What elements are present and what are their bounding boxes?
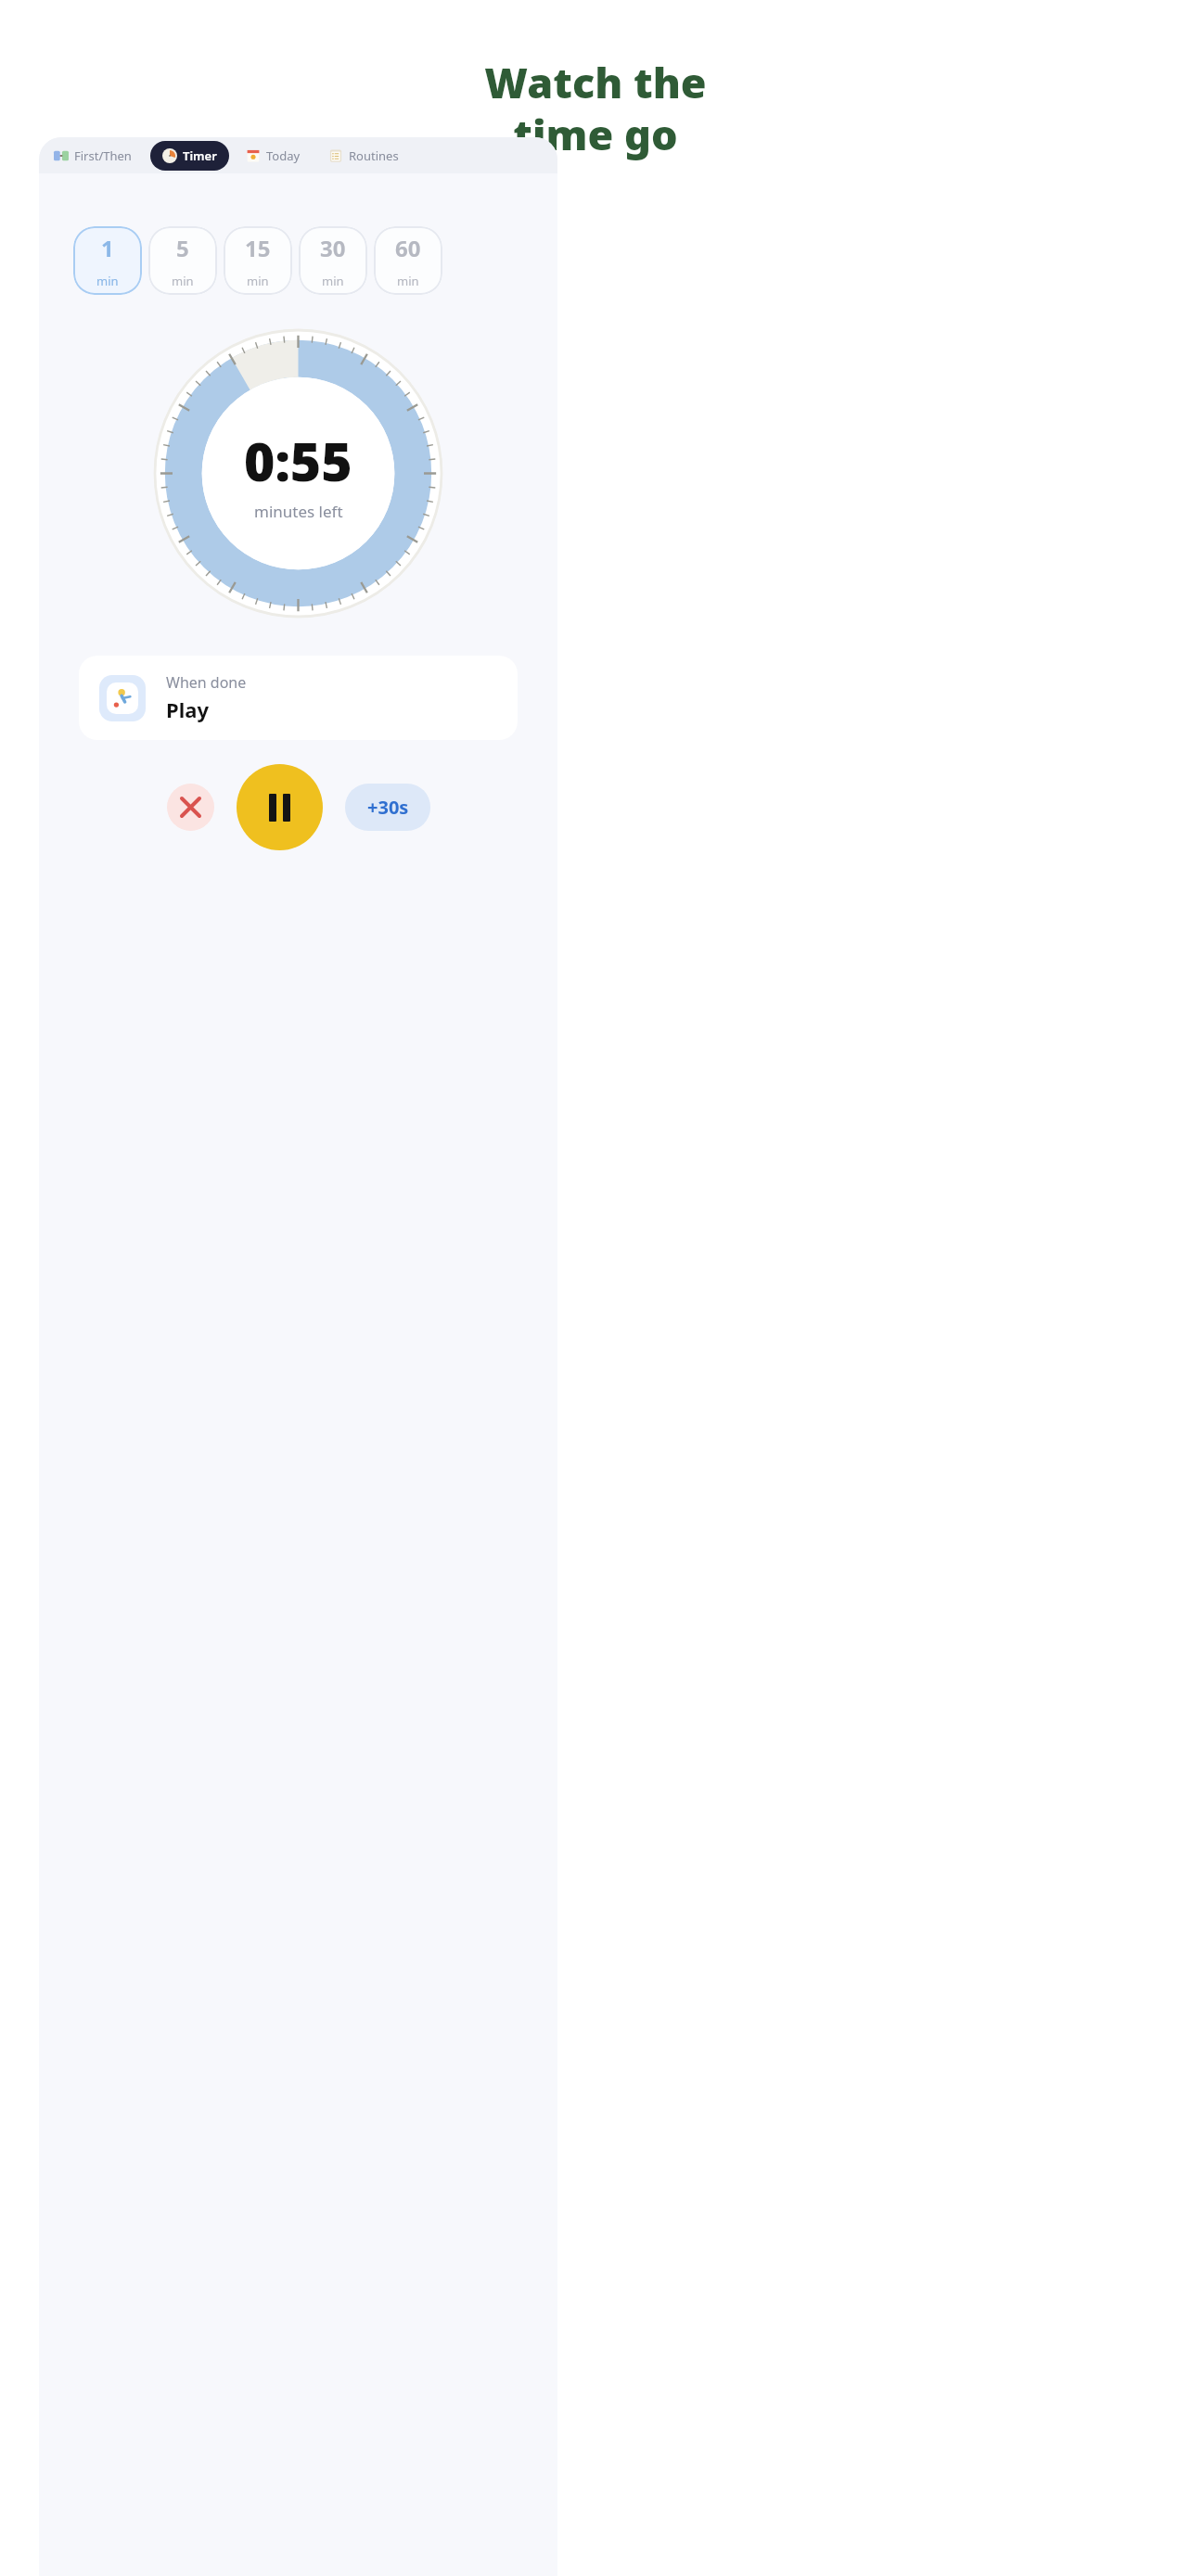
staticText: min	[172, 273, 194, 289]
staticText: 15	[245, 233, 271, 263]
staticText: 1	[101, 233, 114, 263]
staticText: First/Then	[74, 147, 132, 164]
staticText: min	[96, 273, 119, 289]
staticText: minutes left	[254, 501, 343, 522]
staticText: Routines	[349, 147, 399, 164]
staticText: When done	[166, 672, 247, 693]
button[interactable]: 1	[73, 226, 142, 295]
staticText: Play	[166, 695, 209, 723]
staticText: 0:55	[244, 425, 352, 497]
staticText: min	[247, 273, 269, 289]
staticText: min	[322, 273, 344, 289]
staticText: +30s	[367, 795, 409, 820]
button[interactable]: +30s	[345, 784, 430, 831]
staticText: Watch the time go	[456, 54, 735, 162]
button[interactable]: When done	[79, 656, 518, 740]
staticText: 60	[395, 233, 421, 263]
staticText: 5	[176, 233, 189, 263]
button[interactable]: 30	[299, 226, 367, 295]
button[interactable]: Pause timer	[237, 764, 323, 850]
button[interactable]: First/Then	[52, 141, 134, 171]
staticText: Today	[266, 147, 301, 164]
button[interactable]: 5	[148, 226, 217, 295]
button[interactable]: 60	[374, 226, 442, 295]
button[interactable]: Routines	[327, 141, 401, 171]
button[interactable]: 15	[224, 226, 292, 295]
button[interactable]: Timer	[150, 141, 229, 171]
staticText: min	[397, 273, 419, 289]
button[interactable]: Cancel timer	[167, 784, 214, 831]
button[interactable]: Today	[244, 141, 302, 171]
staticText: Timer	[183, 147, 217, 164]
staticText: 30	[320, 233, 346, 263]
